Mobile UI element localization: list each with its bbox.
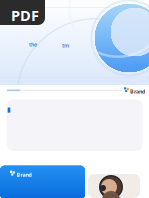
staticText: PDF — [11, 5, 39, 25]
staticText: Brand — [130, 88, 145, 95]
button[interactable] — [6, 99, 142, 151]
staticText: Brand — [16, 171, 31, 178]
staticText: tm — [62, 42, 69, 49]
staticText: the — [29, 41, 37, 48]
button[interactable]: PDF — [0, 0, 45, 25]
button[interactable]: Brand card — [0, 165, 85, 198]
button[interactable]: Support agent photo — [88, 174, 140, 198]
